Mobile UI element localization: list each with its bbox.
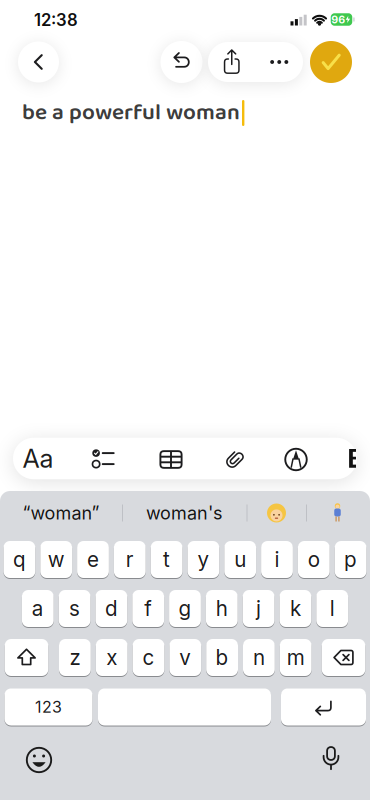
staticText: Aa <box>22 443 53 474</box>
button[interactable]: Undo <box>160 41 202 83</box>
staticText: j <box>256 596 261 621</box>
button[interactable]: e <box>77 540 109 578</box>
staticText: z <box>69 645 80 670</box>
button[interactable]: woman standing emoji <box>308 493 366 533</box>
button[interactable]: k <box>279 589 311 627</box>
staticText: r <box>126 547 134 572</box>
button[interactable]: j <box>243 589 274 627</box>
staticText: w <box>48 547 65 572</box>
button[interactable]: 123 <box>4 688 92 726</box>
button[interactable]: a <box>22 589 54 627</box>
staticText: B <box>347 443 364 474</box>
staticText: l <box>330 596 335 621</box>
button[interactable]: Draw <box>279 442 313 476</box>
button[interactable]: Shift <box>5 638 48 676</box>
button[interactable]: Format <box>16 438 60 479</box>
button[interactable]: b <box>206 638 238 676</box>
staticText: o <box>308 547 320 572</box>
button[interactable]: Bold <box>347 438 355 479</box>
button[interactable]: q <box>3 540 35 578</box>
button[interactable]: woman emoji <box>248 493 304 533</box>
staticText: be a powerful woman <box>22 95 240 131</box>
staticText: p <box>344 547 357 572</box>
button[interactable]: “woman” <box>1 493 121 533</box>
button[interactable]: Return <box>281 688 366 726</box>
button[interactable]: Delete <box>322 638 365 676</box>
staticText: 123 <box>35 697 62 717</box>
button[interactable]: Attachment <box>218 442 252 476</box>
button[interactable]: f <box>132 589 164 627</box>
button[interactable]: u <box>224 540 256 578</box>
button[interactable]: Checklist <box>85 444 119 472</box>
staticText: v <box>179 645 191 670</box>
staticText: g <box>178 596 191 621</box>
button[interactable]: v <box>169 638 201 676</box>
button[interactable]: l <box>316 589 348 627</box>
button[interactable]: t <box>151 540 182 578</box>
staticText: h <box>216 596 228 621</box>
button[interactable]: Emoji <box>21 742 57 778</box>
staticText: c <box>142 645 154 670</box>
button[interactable]: Back <box>18 41 59 82</box>
button[interactable]: y <box>187 540 219 578</box>
staticText: m <box>287 645 305 670</box>
button[interactable]: r <box>114 540 146 578</box>
button[interactable]: More <box>255 42 303 82</box>
staticText: woman's <box>146 502 223 524</box>
button[interactable]: i <box>261 540 293 578</box>
staticText: x <box>106 645 117 670</box>
staticText: n <box>253 645 265 670</box>
staticText: b <box>216 645 229 670</box>
button[interactable]: d <box>95 589 127 627</box>
staticText: i <box>274 547 279 572</box>
button[interactable]: Dictate <box>313 742 349 778</box>
button[interactable]: m <box>280 638 312 676</box>
staticText: 12:38 <box>34 10 78 30</box>
staticText: e <box>87 547 99 572</box>
staticText: q <box>13 547 26 572</box>
staticText: y <box>197 547 209 572</box>
staticText: t <box>163 547 170 572</box>
button[interactable]: Done <box>310 41 352 83</box>
button[interactable]: n <box>243 638 275 676</box>
button[interactable]: h <box>206 589 238 627</box>
button[interactable]: woman's <box>123 493 245 533</box>
button[interactable]: g <box>169 589 201 627</box>
staticText: “woman” <box>22 502 99 524</box>
staticText: s <box>69 596 80 621</box>
button[interactable]: s <box>59 589 90 627</box>
staticText: f <box>144 596 152 621</box>
staticText: 96 <box>331 13 345 26</box>
button[interactable]: Share <box>208 42 255 82</box>
button[interactable]: Space <box>98 688 271 726</box>
button[interactable]: x <box>96 638 128 676</box>
staticText: k <box>290 596 301 621</box>
button[interactable]: Table <box>154 442 188 476</box>
button[interactable]: w <box>40 540 72 578</box>
staticText: u <box>234 547 246 572</box>
button[interactable]: p <box>335 540 366 578</box>
staticText: d <box>105 596 118 621</box>
button[interactable]: z <box>59 638 91 676</box>
button[interactable]: c <box>133 638 164 676</box>
button[interactable]: o <box>298 540 330 578</box>
staticText: a <box>32 596 44 621</box>
